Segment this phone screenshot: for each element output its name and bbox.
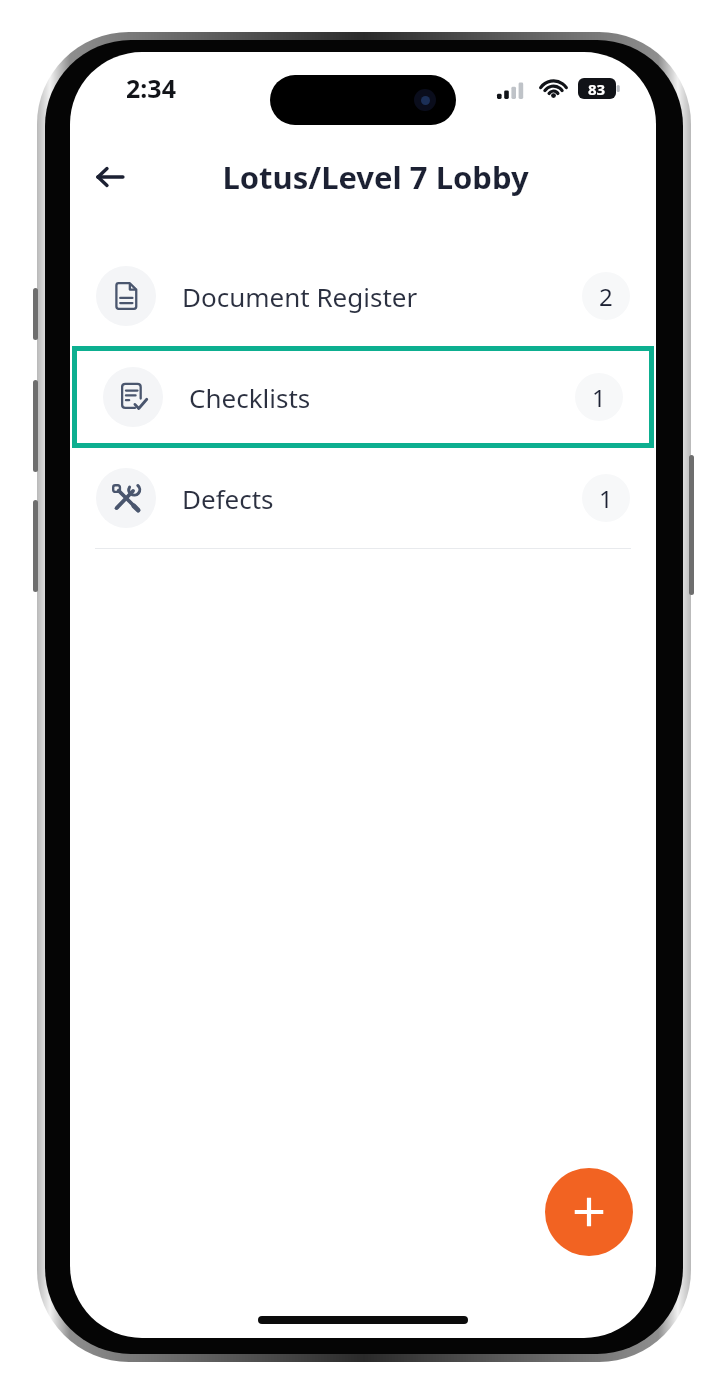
staticText: 2:34 [126, 71, 176, 105]
staticText: 83 [588, 79, 606, 99]
staticText: 1 [599, 482, 613, 515]
staticText: Checklists [189, 380, 311, 415]
button[interactable]: Document Register [70, 246, 656, 346]
button[interactable]: Add [545, 1168, 633, 1256]
staticText: 1 [592, 381, 606, 414]
button[interactable]: Checklists [77, 351, 649, 443]
staticText: Lotus/Level 7 Lobby [222, 156, 529, 198]
staticText: Defects [182, 481, 274, 516]
staticText: Document Register [182, 279, 418, 314]
button[interactable]: Defects [70, 448, 656, 548]
staticText: 2 [599, 280, 613, 313]
button[interactable]: Back [82, 149, 138, 205]
